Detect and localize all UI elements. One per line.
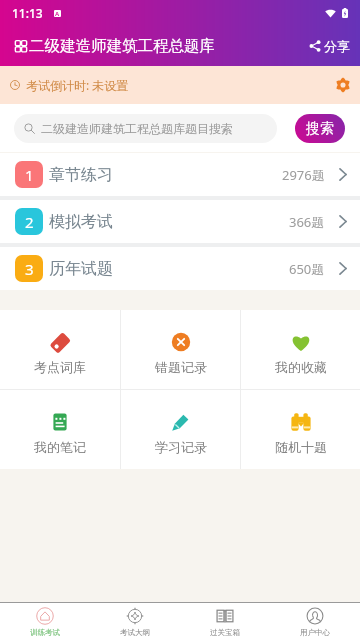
staticText: 11:13 — [12, 5, 43, 21]
staticText: 随机十题 — [275, 439, 327, 455]
staticText: 模拟考试 — [49, 212, 113, 232]
staticText: 650题 — [289, 260, 325, 278]
staticText: 二级建造师建筑工程总题库 — [29, 36, 215, 56]
staticText: 3 — [25, 259, 34, 279]
button[interactable]: 随机十题 — [241, 390, 360, 469]
staticText: 用户中心 — [300, 628, 330, 637]
button[interactable]: 分享 — [301, 32, 360, 60]
button[interactable]: 考试大纲 — [90, 603, 180, 640]
button[interactable]: 训练考试 — [0, 603, 90, 640]
button[interactable]: 考点词库 — [0, 310, 120, 389]
staticText: 章节练习 — [49, 165, 113, 185]
staticText: 分享 — [324, 38, 350, 54]
staticText: 二级建造师建筑工程总题库题目搜索 — [41, 121, 233, 136]
button[interactable]: 3 — [0, 247, 360, 290]
staticText: 我的收藏 — [275, 359, 327, 375]
staticText: 考试大纲 — [120, 628, 150, 637]
staticText: 考点词库 — [34, 359, 86, 375]
button[interactable]: 考试倒计时: 未设置 — [0, 66, 360, 104]
button[interactable]: 2 — [0, 200, 360, 243]
staticText: 考试倒计时: 未设置 — [26, 77, 129, 93]
button[interactable]: 二级建造师建筑工程总题库题目搜索 — [14, 114, 277, 143]
staticText: 过关宝箱 — [210, 628, 240, 637]
button[interactable]: 过关宝箱 — [180, 603, 270, 640]
staticText: 我的笔记 — [34, 439, 86, 455]
button[interactable]: 1 — [0, 153, 360, 196]
staticText: A — [55, 10, 60, 17]
staticText: 2 — [25, 212, 34, 232]
button[interactable]: 用户中心 — [270, 603, 360, 640]
staticText: 历年试题 — [49, 259, 113, 279]
staticText: 学习记录 — [155, 439, 207, 455]
staticText: 错题记录 — [155, 359, 207, 375]
button[interactable]: 我的笔记 — [0, 390, 120, 469]
staticText: 1 — [25, 165, 34, 185]
staticText: 2976题 — [282, 166, 325, 184]
button[interactable]: 错题记录 — [121, 310, 240, 389]
button[interactable]: 我的收藏 — [241, 310, 360, 389]
staticText: 训练考试 — [30, 628, 60, 637]
button[interactable]: 搜索 — [295, 114, 345, 143]
staticText: 366题 — [289, 213, 325, 231]
staticText: 搜索 — [306, 120, 334, 138]
button[interactable]: Settings — [335, 77, 351, 93]
button[interactable]: 学习记录 — [121, 390, 240, 469]
